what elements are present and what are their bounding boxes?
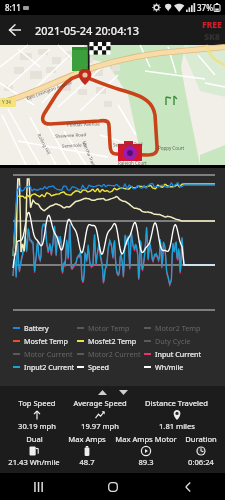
button[interactable]: Input Current <box>144 349 225 359</box>
button[interactable]: Distance Traveled <box>145 398 208 431</box>
button[interactable]: FreeSK8 <box>202 18 222 42</box>
button[interactable]: Home <box>75 473 150 500</box>
button[interactable]: Motor Temp <box>77 323 225 333</box>
staticText: East Lexington Avenue <box>25 79 73 101</box>
button[interactable]: Next <box>116 386 130 398</box>
button[interactable]: Dual <box>8 434 60 467</box>
staticText: Seminole Trail <box>113 140 143 147</box>
staticText: Rolling Hill <box>36 132 53 155</box>
staticText: Seminole Tr <box>62 141 87 149</box>
staticText: Duration <box>185 434 217 444</box>
button[interactable]: Max Amps Motor <box>115 434 177 467</box>
staticText: 0:06:24 <box>188 457 214 467</box>
button[interactable]: Back <box>150 473 225 500</box>
staticText: Wh/mile <box>155 362 184 372</box>
staticText: Top Speed <box>18 398 56 408</box>
staticText: FREE <box>202 18 222 30</box>
staticText: 30.19 mph <box>18 421 56 431</box>
staticText: Mosfet2 Temp <box>88 336 137 346</box>
staticText: 2021-05-24 20:04:13 <box>35 23 139 38</box>
staticText: Battery <box>24 323 49 333</box>
staticText: Duty Cycle <box>155 336 191 346</box>
button[interactable]: Duration <box>185 434 217 467</box>
button[interactable]: Recents <box>0 473 75 500</box>
staticText: 37% <box>197 2 213 13</box>
staticText: Input Current <box>155 349 202 359</box>
staticText: 8:11 <box>5 2 21 13</box>
staticText: 89.3 <box>138 457 154 467</box>
staticText: Motor Temp <box>88 323 130 333</box>
staticText: Mosfet Temp <box>24 336 68 346</box>
staticText: Poppy Court <box>158 145 185 151</box>
button[interactable]: Top Speed <box>18 398 56 431</box>
staticText: Max Amps Motor <box>115 434 177 444</box>
staticText: SK8 <box>204 30 220 42</box>
button[interactable]: Input2 Current <box>13 362 225 372</box>
staticText: 19.97 mph <box>81 421 119 431</box>
button[interactable]: Battery <box>13 323 225 333</box>
staticText: Motor Current <box>24 349 73 359</box>
button[interactable]: Duty Cycle <box>144 336 225 346</box>
button[interactable]: Speed <box>77 362 225 372</box>
staticText: Input2 Current <box>24 362 75 372</box>
staticText: Average Speed <box>73 398 127 408</box>
button[interactable]: Back <box>0 15 30 45</box>
button[interactable]: Average Speed <box>73 398 127 431</box>
staticText: 21.43 Wh/mile <box>8 457 60 467</box>
staticText: Max Amps <box>68 434 106 444</box>
staticText: 48.7 <box>79 457 95 467</box>
staticText: Y 34 <box>2 99 11 105</box>
staticText: Motor2 Current <box>88 349 141 359</box>
button[interactable]: Mosfet Temp <box>13 336 225 346</box>
button[interactable]: Wh/mile <box>144 362 225 372</box>
staticText: Pontiac Avenue <box>67 120 100 127</box>
staticText: Speed <box>88 362 109 372</box>
button[interactable]: Previous <box>95 386 109 398</box>
staticText: Marcha Trail <box>81 140 97 166</box>
button[interactable]: Motor2 Current <box>77 349 225 359</box>
staticText: Raleigh Court <box>118 160 147 166</box>
staticText: Dual <box>26 434 43 444</box>
staticText: Motor2 Temp <box>155 323 201 333</box>
button[interactable]: Motor2 Temp <box>144 323 225 333</box>
staticText: Shawnee Road <box>55 131 87 139</box>
button[interactable]: Motor Current <box>13 349 225 359</box>
staticText: 1.81 miles <box>159 421 195 431</box>
staticText: Distance Traveled <box>145 398 208 408</box>
button[interactable]: Mosfet2 Temp <box>77 336 225 346</box>
button[interactable]: Max Amps <box>68 434 106 467</box>
